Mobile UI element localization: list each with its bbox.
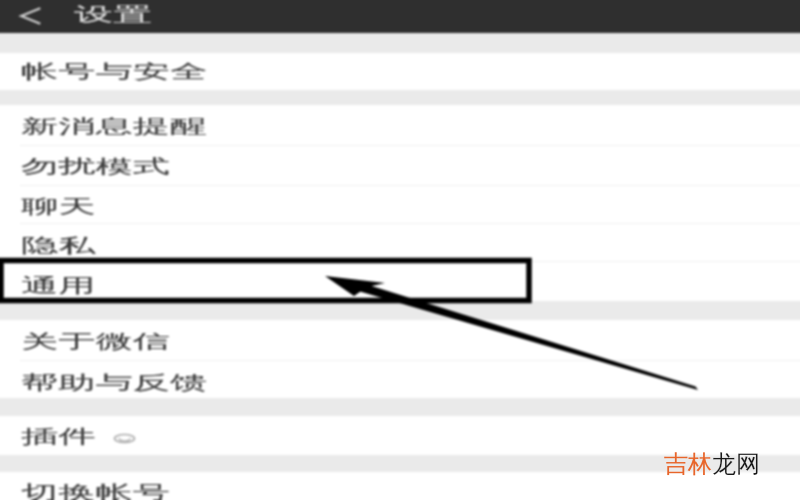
staticText: 切换帐号 — [21, 481, 170, 500]
staticText: 聊天 — [21, 195, 95, 219]
button[interactable]: 切换帐号 — [0, 472, 800, 500]
staticText: 通用 — [21, 274, 95, 298]
staticText: 切换帐号 — [21, 481, 170, 500]
button[interactable]: 隐私 — [0, 224, 800, 262]
staticText: 插件 — [21, 425, 95, 449]
staticText: 插件 — [21, 425, 95, 449]
button[interactable]: 勿扰模式 — [0, 146, 800, 186]
staticText: 勿扰模式 — [21, 155, 170, 179]
button[interactable]: 帐号与安全 — [0, 53, 800, 90]
staticText: 隐私 — [21, 234, 95, 258]
button[interactable]: 关于微信 — [0, 320, 800, 361]
staticText: 勿扰模式 — [21, 155, 170, 179]
staticText: 隐私 — [21, 234, 95, 258]
staticText: 帐号与安全 — [21, 60, 207, 84]
button[interactable]: Back — [10, 3, 44, 29]
staticText: 帮助与反馈 — [21, 371, 207, 395]
staticText: 吉林龙网 — [664, 449, 760, 479]
staticText: 聊天 — [21, 195, 95, 219]
button[interactable]: 新消息提醒 — [0, 105, 800, 146]
button[interactable]: 通用 — [0, 262, 800, 301]
staticText: 关于微信 — [21, 330, 170, 354]
staticText: 通用 — [21, 274, 95, 298]
button[interactable]: 帮助与反馈 — [0, 361, 800, 398]
button[interactable]: 聊天 — [0, 186, 800, 224]
button[interactable]: 插件 — [0, 416, 800, 455]
staticText: 帮助与反馈 — [21, 371, 207, 395]
staticText: 新消息提醒 — [21, 115, 207, 139]
staticText: 设置 — [74, 3, 152, 27]
staticText: 帐号与安全 — [21, 60, 207, 84]
staticText: 新消息提醒 — [21, 115, 207, 139]
staticText: 关于微信 — [21, 330, 170, 354]
